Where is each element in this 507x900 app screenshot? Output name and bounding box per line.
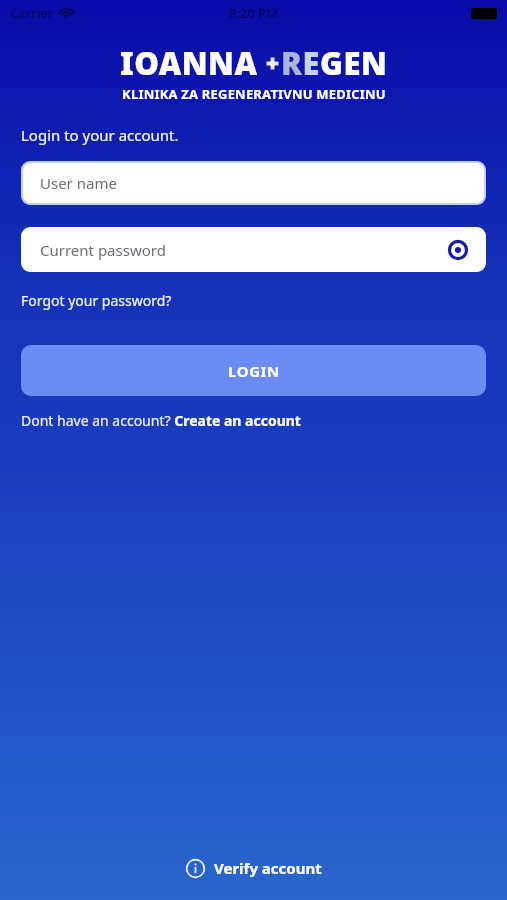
button[interactable]: Dont have an account? Create an account [21, 411, 301, 430]
button[interactable]: Current password [21, 227, 486, 272]
button[interactable]: LOGIN [21, 345, 486, 396]
staticText: LOGIN [228, 361, 280, 381]
button[interactable]: Verify account [174, 852, 334, 884]
button[interactable]: User name [23, 163, 484, 203]
staticText: KLINIKA ZA REGENERATIVNU MEDICINU [122, 85, 386, 103]
button[interactable]: Show password [444, 236, 472, 264]
staticText: Carrier [10, 4, 54, 22]
staticText: 8:20 PM [229, 4, 279, 22]
staticText: Login to your account. [21, 125, 179, 145]
staticText: Verify account [214, 858, 322, 878]
staticText: IOANNA [120, 42, 258, 84]
staticText: Current password [40, 240, 166, 260]
staticText: User name [40, 173, 117, 193]
button[interactable]: Forgot your password? [21, 291, 172, 310]
staticText: REGEN [281, 42, 388, 84]
